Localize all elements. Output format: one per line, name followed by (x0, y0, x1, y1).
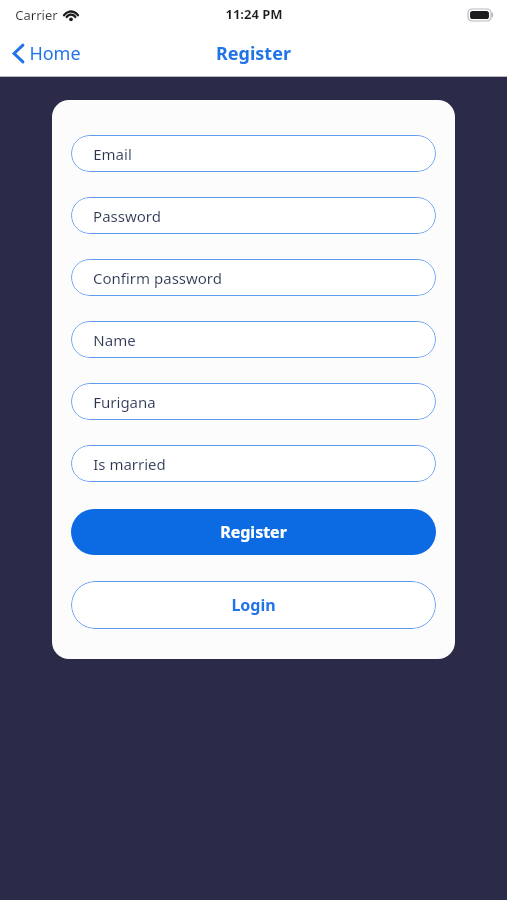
staticText: Home (29, 41, 81, 66)
other: Back (13, 44, 24, 63)
staticText: Furigana (93, 392, 156, 412)
staticText: Login (231, 594, 276, 616)
button[interactable]: Password (71, 197, 436, 234)
staticText: Name (93, 330, 136, 350)
button[interactable]: Login (71, 581, 436, 629)
staticText: Is married (93, 454, 166, 474)
button[interactable]: Register (71, 509, 436, 555)
staticText: Register (216, 41, 291, 66)
other: Battery (468, 9, 494, 21)
staticText: 11:24 PM (225, 5, 283, 23)
button[interactable]: Name (71, 321, 436, 358)
button[interactable]: Confirm password (71, 259, 436, 296)
staticText: Email (93, 144, 132, 164)
staticText: Confirm password (93, 268, 222, 288)
staticText: Register (220, 521, 287, 543)
button[interactable]: Back (0, 33, 93, 74)
staticText: Password (93, 206, 161, 226)
button[interactable]: Is married (71, 445, 436, 482)
staticText: Carrier (15, 6, 58, 24)
button[interactable]: Email (71, 135, 436, 172)
button[interactable]: Furigana (71, 383, 436, 420)
